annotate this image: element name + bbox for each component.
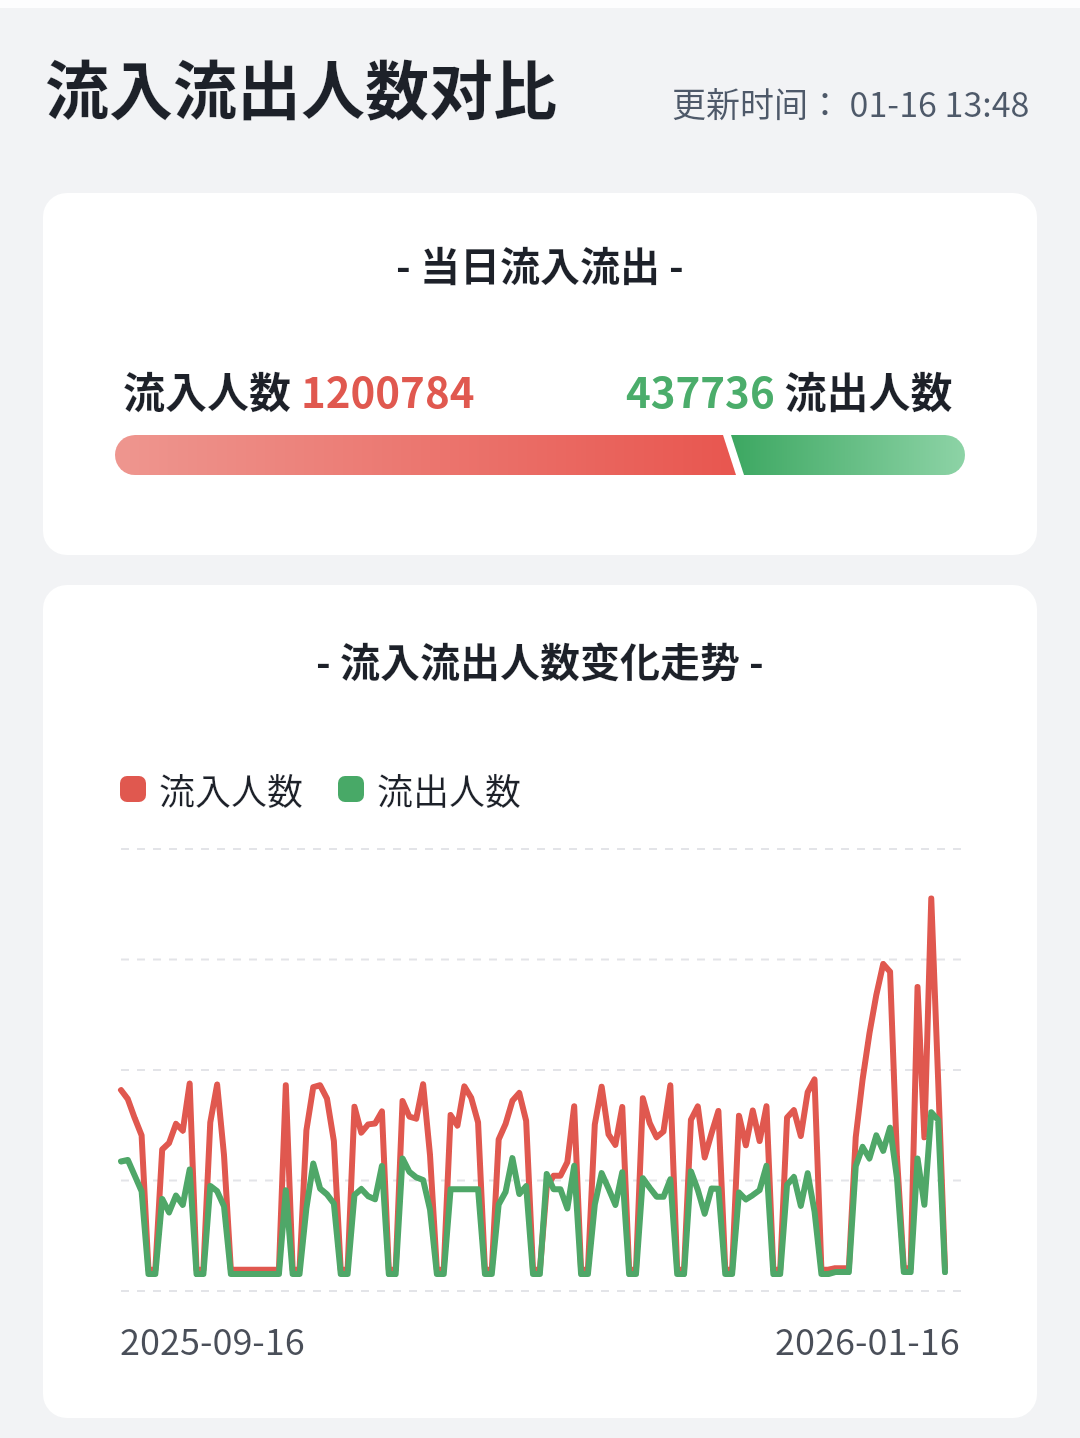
staticText: 流出人数 — [775, 359, 953, 420]
staticText: 流入流出人数对比 — [45, 40, 557, 133]
staticText: 2026-01-16 — [775, 1313, 960, 1365]
staticText: - 流入流出人数变化走势 - — [316, 631, 764, 689]
staticText: 437736 — [626, 359, 775, 420]
staticText: 流出人数 — [377, 763, 522, 815]
button[interactable]: - 流入流出人数变化走势 - — [43, 585, 1037, 1418]
staticText: - 当日流入流出 - — [396, 235, 684, 293]
staticText: 更新时间： 01-16 13:48 — [672, 78, 1030, 127]
staticText: 流入人数 — [159, 763, 304, 815]
staticText: 流入人数 — [123, 359, 301, 420]
staticText: 2025-09-16 — [120, 1313, 305, 1365]
staticText: 1200784 — [301, 359, 475, 420]
button[interactable]: - 当日流入流出 - — [43, 193, 1037, 555]
